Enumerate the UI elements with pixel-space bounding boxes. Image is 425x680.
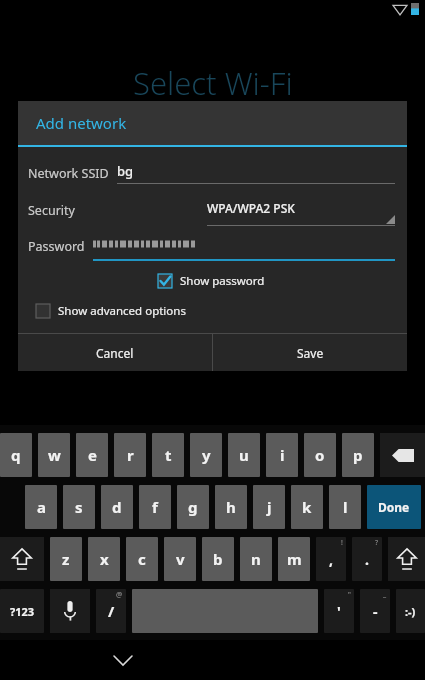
button[interactable]: Show password [18,271,407,291]
button[interactable]: z [50,537,82,581]
button[interactable]: , [316,537,346,581]
staticText: j [267,497,272,517]
button[interactable]: w [38,433,70,477]
button[interactable]: o [304,433,336,477]
staticText: " [348,590,351,600]
staticText: f [152,497,158,517]
button[interactable]: l [329,485,361,529]
staticText: k [302,497,312,517]
staticText: w [48,445,61,465]
staticText: Security [28,202,75,219]
staticText: l [343,497,348,517]
staticText: , [329,550,333,569]
button[interactable]: / [96,589,126,633]
button[interactable]: v [164,537,196,581]
staticText: h [226,497,236,517]
staticText: - [373,602,378,621]
button[interactable]: d [101,485,133,529]
button[interactable]: Hide keyboard [103,640,143,680]
button[interactable]: Done [367,485,421,529]
button[interactable]: f [139,485,171,529]
staticText: Cancel [96,345,134,361]
button[interactable]: i [266,433,298,477]
button[interactable]: Backspace [380,433,425,477]
button[interactable]: x [88,537,120,581]
staticText: s [75,497,83,517]
staticText: Add network [36,113,127,133]
staticText: p [353,445,363,465]
button[interactable]: s [63,485,95,529]
staticText: ! [341,538,343,548]
staticText: Password [28,238,85,255]
staticText: q [11,445,21,465]
staticText: Done [378,499,410,515]
button[interactable]: k [291,485,323,529]
staticText: ?123 [10,604,35,619]
staticText: WPA/WPA2 PSK [207,200,295,216]
button[interactable]: j [253,485,285,529]
button[interactable]: h [215,485,247,529]
button[interactable]: Cancel [18,334,212,371]
button[interactable]: r [114,433,146,477]
staticText: Show advanced options [58,303,186,319]
button[interactable]: - [360,589,390,633]
button[interactable]: Save [213,334,407,371]
staticText: c [138,549,146,569]
staticText: x [100,549,109,569]
button[interactable]: Shift [388,537,425,581]
button[interactable]: y [190,433,222,477]
button[interactable]: t [152,433,184,477]
staticText: y [202,445,211,465]
staticText: d [112,497,122,517]
staticText: @ [116,590,123,600]
staticText: Select Wi-Fi [133,62,293,104]
button[interactable]: n [240,537,272,581]
staticText: o [315,445,325,465]
staticText: m [287,549,302,569]
staticText: / [108,601,115,621]
staticText: v [176,549,185,569]
staticText: r [127,445,134,465]
button[interactable]: Show advanced options [18,301,407,321]
button[interactable]: ' [324,589,354,633]
staticText: Show password [180,273,265,289]
button[interactable]: g [177,485,209,529]
button[interactable]: p [342,433,374,477]
staticText: ' [337,602,341,621]
staticText: z [62,549,70,569]
staticText: t [165,445,172,465]
button[interactable]: u [228,433,260,477]
button[interactable]: m [278,537,310,581]
button[interactable]: c [126,537,158,581]
staticText: n [251,549,261,569]
button[interactable]: :-) [396,589,425,633]
button[interactable]: Shift [0,537,44,581]
staticText: Save [297,345,324,361]
button[interactable]: WPA/WPA2 PSK [207,194,395,226]
staticText: ? [375,538,379,548]
staticText: _ [383,590,387,600]
button[interactable]: a [25,485,57,529]
button[interactable]: . [352,537,382,581]
staticText: a [37,497,46,517]
staticText: u [239,445,249,465]
button[interactable]: e [76,433,108,477]
button[interactable]: q [0,433,32,477]
button[interactable]: b [202,537,234,581]
staticText: e [88,445,97,465]
staticText: . [365,550,369,569]
button[interactable]: Voice input [50,589,90,633]
button[interactable]: ?123 [0,589,44,633]
staticText: bg [117,162,134,180]
staticText: g [188,497,198,517]
staticText: b [213,549,223,569]
staticText: i [280,445,285,465]
staticText: :-) [405,604,416,619]
staticText: Network SSID [28,165,109,182]
